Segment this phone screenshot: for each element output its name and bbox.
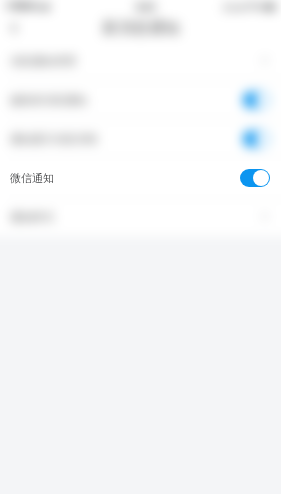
staticText: 消息通知管理	[10, 54, 76, 68]
button[interactable]: 通知显示消息详情	[0, 119, 281, 158]
staticText: 9:41	[136, 0, 156, 13]
staticText: 78%	[246, 1, 263, 13]
button[interactable]: Toggle notification	[240, 169, 270, 187]
button[interactable]: 通知样式	[0, 197, 281, 236]
button[interactable]: 微信通知	[0, 161, 281, 194]
staticText: 新消息通知	[102, 18, 180, 38]
staticText: HD	[223, 2, 235, 13]
button[interactable]: 消息通知管理	[0, 41, 281, 80]
staticText: 接收新消息通知	[10, 93, 87, 107]
staticText: 微信通知	[10, 171, 54, 185]
button[interactable]: Back	[0, 14, 28, 41]
staticText: 中国移动	[5, 1, 39, 12]
button[interactable]: Toggle notification	[243, 92, 270, 108]
button[interactable]: 接收新消息通知	[0, 80, 281, 119]
staticText: 通知样式	[10, 210, 54, 224]
button[interactable]: Toggle notification	[243, 131, 270, 147]
staticText: 通知显示消息详情	[10, 132, 98, 146]
